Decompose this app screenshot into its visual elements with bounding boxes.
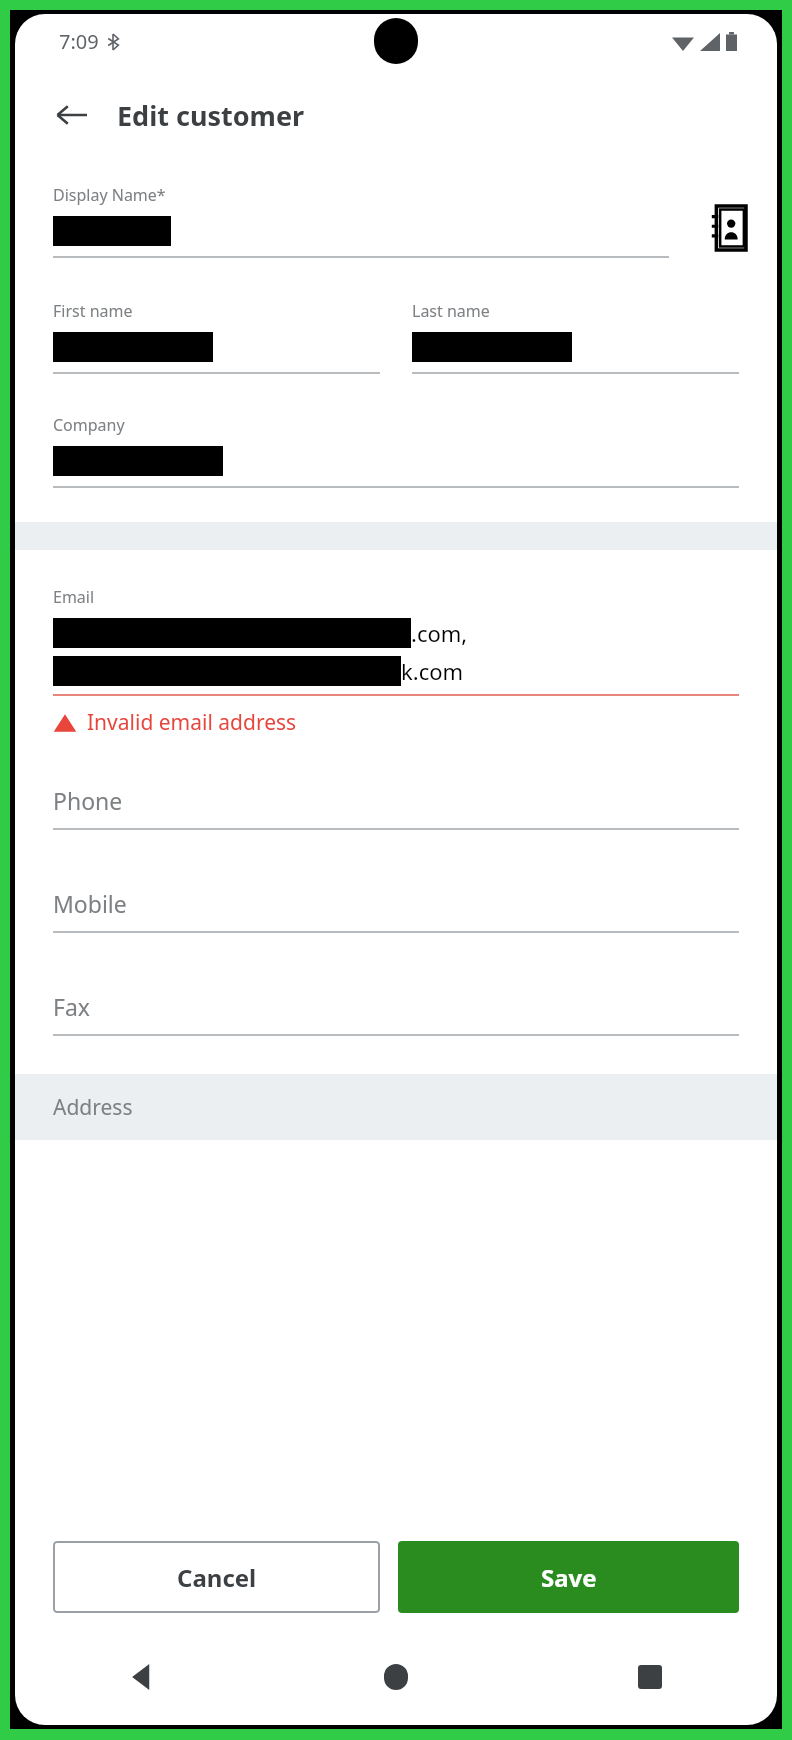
staticText: Display Name* [53,184,166,206]
button[interactable]: Choose from contacts [701,202,753,254]
staticText: 7:09 [59,28,99,55]
staticText: Cancel [177,1561,257,1594]
button[interactable]: Phone [53,785,739,830]
staticText: Phone [53,785,123,816]
staticText: Edit customer [117,97,305,134]
staticText: Address [53,1093,133,1122]
staticText: Fax [53,991,91,1022]
button[interactable]: Recent apps [523,1629,777,1725]
staticText: Email [53,586,95,608]
button[interactable]: Mobile [53,888,739,933]
staticText: Company [53,414,125,436]
button[interactable]: Home [269,1629,523,1725]
staticText: .com, [411,618,468,648]
button[interactable]: Save [398,1541,739,1613]
staticText: Invalid email address [87,708,297,737]
staticText: Mobile [53,888,127,919]
staticText: Last name [412,300,490,322]
button[interactable]: Back [15,1629,269,1725]
button[interactable]: Cancel [53,1541,380,1613]
staticText: Save [541,1561,597,1594]
staticText: k.com [401,656,464,686]
staticText: First name [53,300,133,322]
button[interactable]: Fax [53,991,739,1036]
button[interactable]: Back [45,88,99,142]
